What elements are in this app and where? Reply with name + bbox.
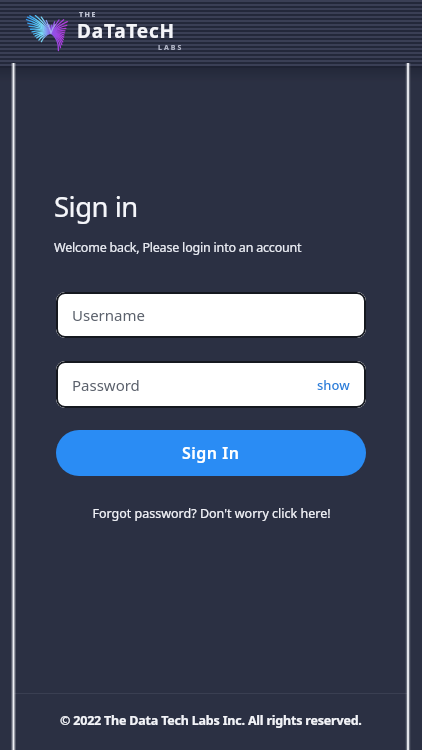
staticText: Username [72,305,145,325]
staticText: LABS [158,43,184,53]
button[interactable]: Sign In [56,430,366,476]
button[interactable]: show [317,376,350,394]
staticText: © 2022 The Data Tech Labs Inc. All right… [60,712,362,729]
staticText: Sign in [54,188,138,225]
button[interactable]: Password [56,361,366,408]
button[interactable]: Username [56,292,366,338]
staticText: Sign In [182,442,240,464]
button[interactable]: Forgot password? Don't worry click here! [0,505,422,522]
staticText: Welcome back, Please login into an accou… [54,239,302,256]
staticText: Password [72,375,140,395]
staticText: THE [79,10,97,20]
staticText: Forgot password? Don't worry click here! [92,505,331,522]
staticText: DaTaTecH [77,18,175,44]
